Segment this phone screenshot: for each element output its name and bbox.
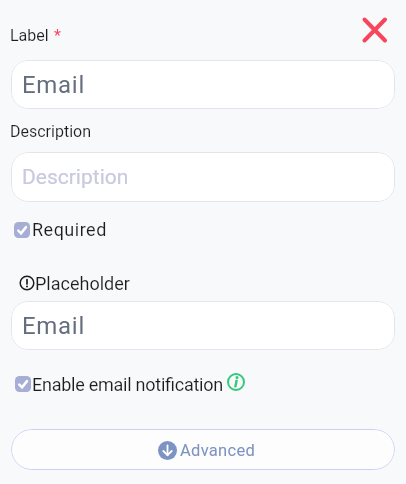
staticText: Description: [10, 122, 91, 140]
staticText: Placeholder: [35, 273, 130, 294]
staticText: Label: [10, 26, 49, 44]
button[interactable]: [358, 14, 390, 46]
staticText: Required: [32, 219, 107, 240]
staticText: Email: [22, 312, 85, 340]
button[interactable]: Description: [11, 152, 395, 202]
button[interactable]: Enable email notification: [15, 373, 245, 395]
staticText: Advanced: [180, 441, 256, 460]
staticText: *: [54, 26, 61, 44]
button[interactable]: Advanced: [11, 429, 395, 470]
button[interactable]: Required: [14, 218, 107, 241]
staticText: Email: [22, 71, 85, 99]
button[interactable]: Email: [11, 301, 395, 350]
button[interactable]: Email: [11, 60, 395, 109]
staticText: Description: [22, 165, 129, 190]
staticText: Enable email notification: [32, 374, 223, 395]
